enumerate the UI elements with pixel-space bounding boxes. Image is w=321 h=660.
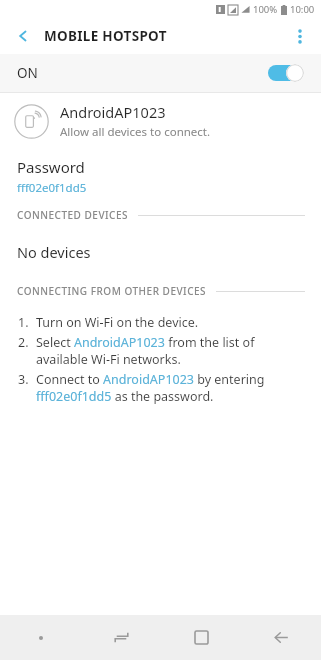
button[interactable]: Password: [0, 149, 321, 202]
staticText: 100%: [253, 3, 278, 16]
staticText: fff02e0f1dd5: [17, 180, 87, 196]
staticText: MOBILE HOTSPOT: [44, 27, 167, 45]
button[interactable]: Navigate up: [8, 21, 38, 51]
staticText: Select AndroidAP1023 from the list of av…: [36, 334, 307, 368]
button[interactable]: Keyboard indicator: [0, 615, 81, 660]
staticText: No devices: [17, 242, 91, 262]
staticText: CONNECTED DEVICES: [17, 208, 129, 222]
staticText: 1.: [18, 314, 36, 331]
button[interactable]: Back: [241, 615, 321, 660]
staticText: ON: [17, 64, 38, 82]
staticText: CONNECTING FROM OTHER DEVICES: [17, 284, 207, 298]
staticText: 3.: [18, 371, 36, 388]
staticText: Password: [17, 157, 85, 177]
button[interactable]: More options: [285, 21, 315, 51]
button[interactable]: ON: [0, 54, 321, 92]
staticText: Connect to AndroidAP1023 by entering fff…: [36, 371, 307, 405]
staticText: 2.: [18, 334, 36, 351]
button[interactable]: Home: [161, 615, 241, 660]
staticText: Turn on Wi-Fi on the device.: [36, 314, 199, 331]
button[interactable]: Recents: [81, 615, 161, 660]
staticText: 10:00: [290, 3, 315, 16]
staticText: Allow all devices to connect.: [60, 124, 211, 140]
button[interactable]: AndroidAP1023: [0, 93, 321, 149]
staticText: AndroidAP1023: [60, 102, 166, 122]
